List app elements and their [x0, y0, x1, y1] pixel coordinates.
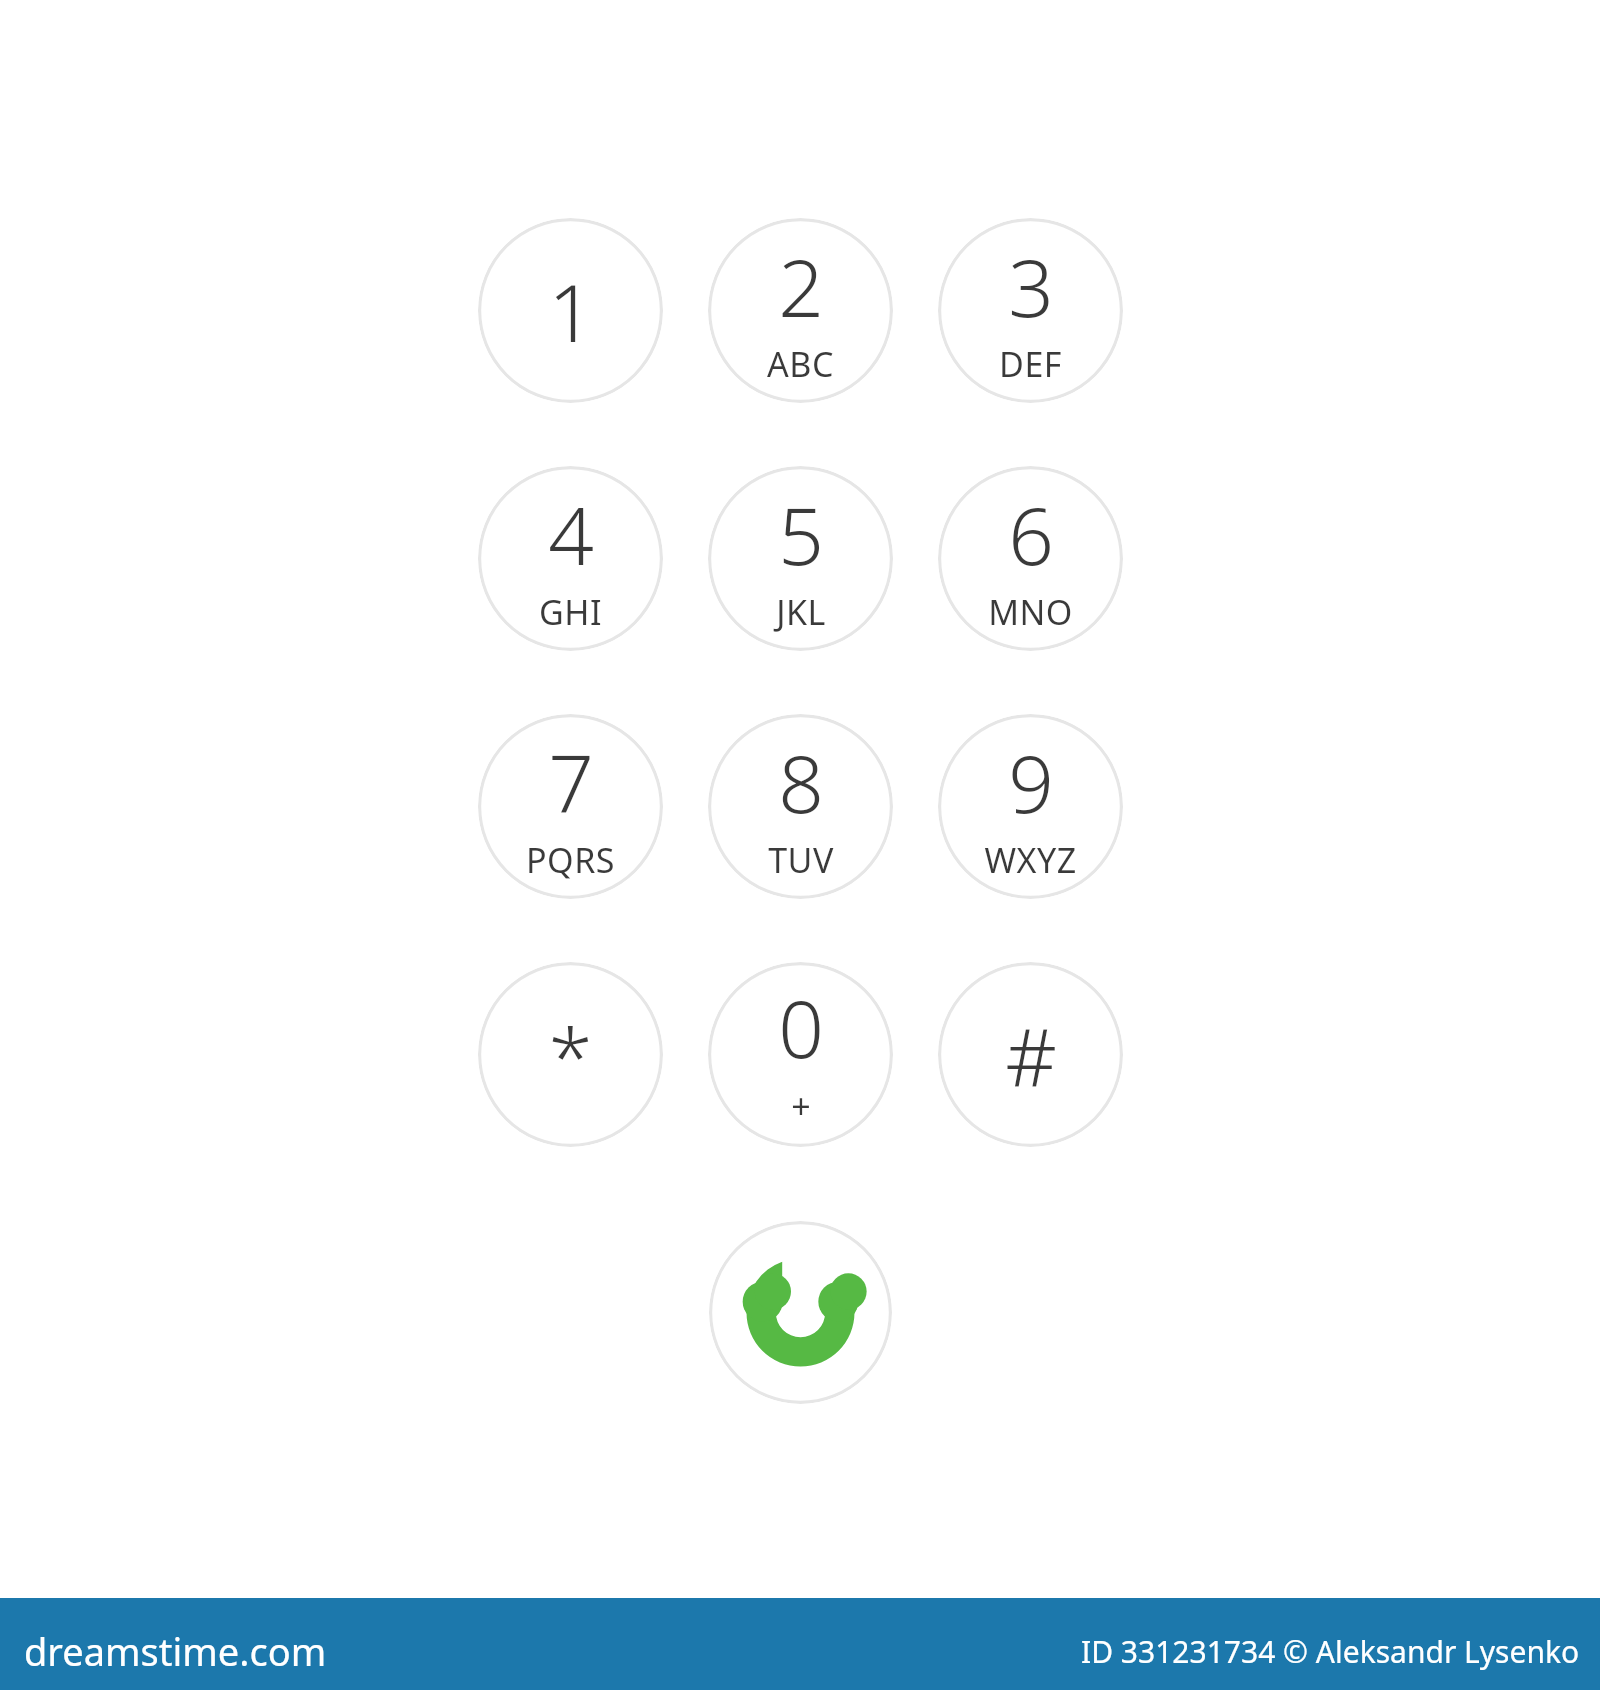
button[interactable]: * [478, 962, 663, 1147]
staticText: + [791, 1083, 811, 1129]
staticText: PQRS [526, 837, 615, 883]
staticText: ID 331231734 © Aleksandr Lysenko [1081, 1631, 1580, 1672]
button[interactable]: 7 [478, 714, 663, 899]
button[interactable]: 1 [478, 218, 663, 403]
staticText: 8 [778, 727, 824, 836]
staticText: 4 [548, 479, 594, 588]
staticText: 1 [548, 256, 594, 365]
button[interactable]: 4 [478, 466, 663, 651]
staticText: ABC [767, 341, 834, 387]
button[interactable]: 0 [708, 962, 893, 1147]
staticText: 2 [778, 231, 824, 340]
staticText: # [1005, 1000, 1057, 1109]
staticText: TUV [768, 837, 834, 883]
staticText: * [548, 1000, 593, 1109]
staticText: dreamstime.com [24, 1625, 327, 1677]
button[interactable]: 8 [708, 714, 893, 899]
staticText: DEF [999, 341, 1062, 387]
staticText: MNO [988, 589, 1073, 635]
staticText: WXYZ [984, 837, 1077, 883]
staticText: 3 [1008, 231, 1054, 340]
staticText: 0 [778, 972, 824, 1081]
staticText: 5 [778, 479, 824, 588]
staticText: 9 [1008, 727, 1054, 836]
staticText: JKL [776, 589, 826, 635]
staticText: GHI [539, 589, 602, 635]
button[interactable]: 9 [938, 714, 1123, 899]
button[interactable]: Call [709, 1221, 892, 1404]
button[interactable]: # [938, 962, 1123, 1147]
button[interactable]: 6 [938, 466, 1123, 651]
button[interactable]: 2 [708, 218, 893, 403]
button[interactable]: 5 [708, 466, 893, 651]
staticText: 6 [1008, 479, 1054, 588]
staticText: 7 [548, 727, 594, 836]
button[interactable]: 3 [938, 218, 1123, 403]
